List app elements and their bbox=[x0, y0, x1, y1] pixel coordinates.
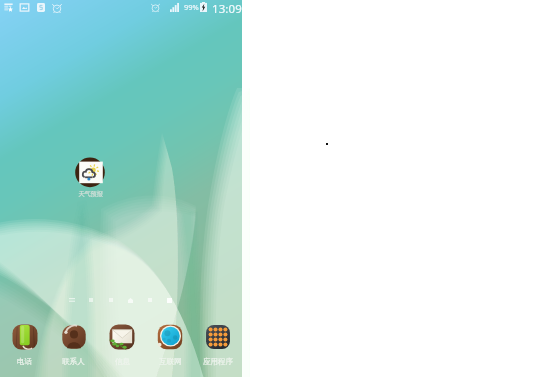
staticText: 13:09 bbox=[212, 1, 242, 17]
button[interactable]: 互联网 bbox=[146, 323, 194, 369]
button[interactable]: 应用程序 bbox=[194, 323, 242, 369]
staticText: 99% bbox=[184, 2, 199, 12]
staticText: 应用程序 bbox=[203, 357, 233, 366]
staticText: 联系人 bbox=[62, 357, 85, 366]
staticText: 天气预报 bbox=[78, 190, 103, 198]
staticText: 互联网 bbox=[159, 357, 182, 366]
button[interactable] bbox=[0, 297, 242, 306]
staticText: 电话 bbox=[17, 357, 32, 366]
button[interactable]: 信息 bbox=[98, 323, 146, 369]
button[interactable]: 电话 bbox=[0, 323, 49, 369]
staticText: 信息 bbox=[115, 357, 130, 366]
button[interactable]: 天气预报 bbox=[70, 155, 110, 197]
button[interactable]: 联系人 bbox=[49, 323, 98, 369]
